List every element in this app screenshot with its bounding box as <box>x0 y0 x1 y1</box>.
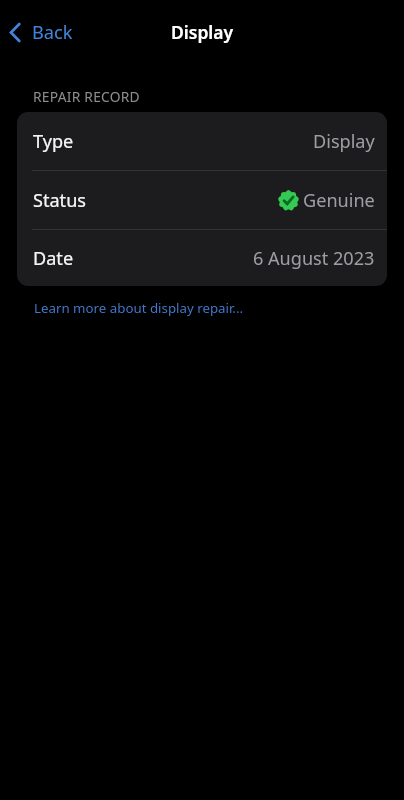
staticText: Back <box>32 20 73 45</box>
staticText: Type <box>33 129 74 154</box>
other: Genuine part <box>278 190 299 211</box>
staticText: Status <box>33 188 86 213</box>
staticText: REPAIR RECORD <box>33 87 140 106</box>
staticText: Date <box>33 246 74 271</box>
staticText: Genuine <box>303 188 375 213</box>
staticText: 6 August 2023 <box>253 246 375 271</box>
button[interactable]: Type <box>17 112 387 170</box>
staticText: Display <box>171 20 234 44</box>
button[interactable]: Learn more about display repair... <box>18 294 260 322</box>
button[interactable]: Back <box>4 13 81 52</box>
staticText: Display <box>313 129 375 154</box>
staticText: Learn more about display repair... <box>34 299 244 317</box>
button[interactable]: Date <box>17 230 387 286</box>
button[interactable]: Status <box>17 171 387 229</box>
other: Back <box>9 23 21 42</box>
